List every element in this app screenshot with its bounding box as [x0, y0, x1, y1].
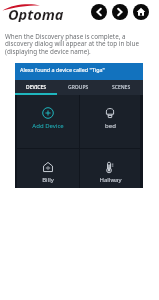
staticText: Optoma: [8, 4, 64, 22]
staticText: Alexa found a device called "Tiga": [20, 66, 105, 73]
staticText: Add Device: [32, 122, 64, 130]
staticText: GROUPS: [68, 84, 89, 91]
button[interactable]: bed: [80, 95, 140, 148]
button[interactable]: Back: [91, 4, 107, 20]
staticText: Billy: [42, 176, 54, 184]
button[interactable]: DEVICES: [15, 80, 57, 95]
staticText: When the Discovery phase is complete, a …: [5, 32, 146, 56]
staticText: bed: [105, 122, 116, 130]
button[interactable]: Add Device: [17, 95, 79, 148]
button[interactable]: Billy: [17, 149, 79, 188]
button[interactable]: Hallway: [80, 149, 140, 188]
button[interactable]: Optoma: [1, 3, 69, 21]
button[interactable]: Forward: [112, 4, 128, 20]
button[interactable]: SCENES: [100, 80, 143, 95]
staticText: DEVICES: [26, 84, 46, 91]
button[interactable]: Home: [133, 4, 149, 20]
staticText: SCENES: [112, 84, 131, 91]
button[interactable]: GROUPS: [57, 80, 100, 95]
button[interactable]: Alexa found a device called "Tiga": [15, 63, 143, 80]
staticText: Hallway: [99, 176, 122, 184]
